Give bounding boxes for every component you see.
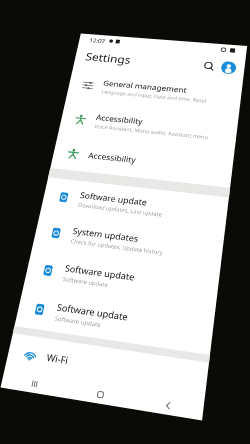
staticText: 12:07	[89, 36, 106, 45]
staticText: Settings	[84, 49, 133, 67]
staticText: Accessibility	[95, 112, 144, 126]
staticText: Download updates, Last update	[77, 201, 163, 218]
staticText: Software update	[62, 275, 109, 289]
button[interactable]: General management	[66, 67, 243, 116]
staticText: Language and input, Date and time, Reset	[101, 88, 208, 104]
button[interactable]: Account	[220, 61, 237, 75]
button[interactable]: Back	[133, 390, 204, 421]
button[interactable]: Accessibility	[50, 135, 234, 188]
staticText: System updates	[72, 225, 139, 245]
staticText: Check for updates, Update history	[70, 237, 164, 257]
staticText: Accessibility	[87, 150, 137, 165]
staticText: Software update	[64, 262, 136, 283]
staticText: Software update	[54, 314, 102, 329]
button[interactable]: Software update	[14, 286, 215, 355]
staticText: Voice Assistant, Mono audio, Assistant m…	[94, 123, 209, 141]
button[interactable]: Search	[200, 59, 218, 74]
button[interactable]: Accessibility	[58, 100, 239, 153]
staticText: Wi-Fi	[45, 350, 69, 367]
staticText: General management	[102, 78, 188, 95]
button[interactable]: System updates	[32, 212, 224, 273]
button[interactable]: Software update	[23, 248, 220, 313]
button[interactable]: Home	[65, 379, 136, 409]
staticText: Software update	[79, 189, 148, 208]
button[interactable]: Wi-Fi	[5, 333, 209, 401]
button[interactable]: Software update	[40, 177, 229, 234]
button[interactable]: Recents	[0, 369, 69, 398]
staticText: Software update	[56, 300, 129, 323]
